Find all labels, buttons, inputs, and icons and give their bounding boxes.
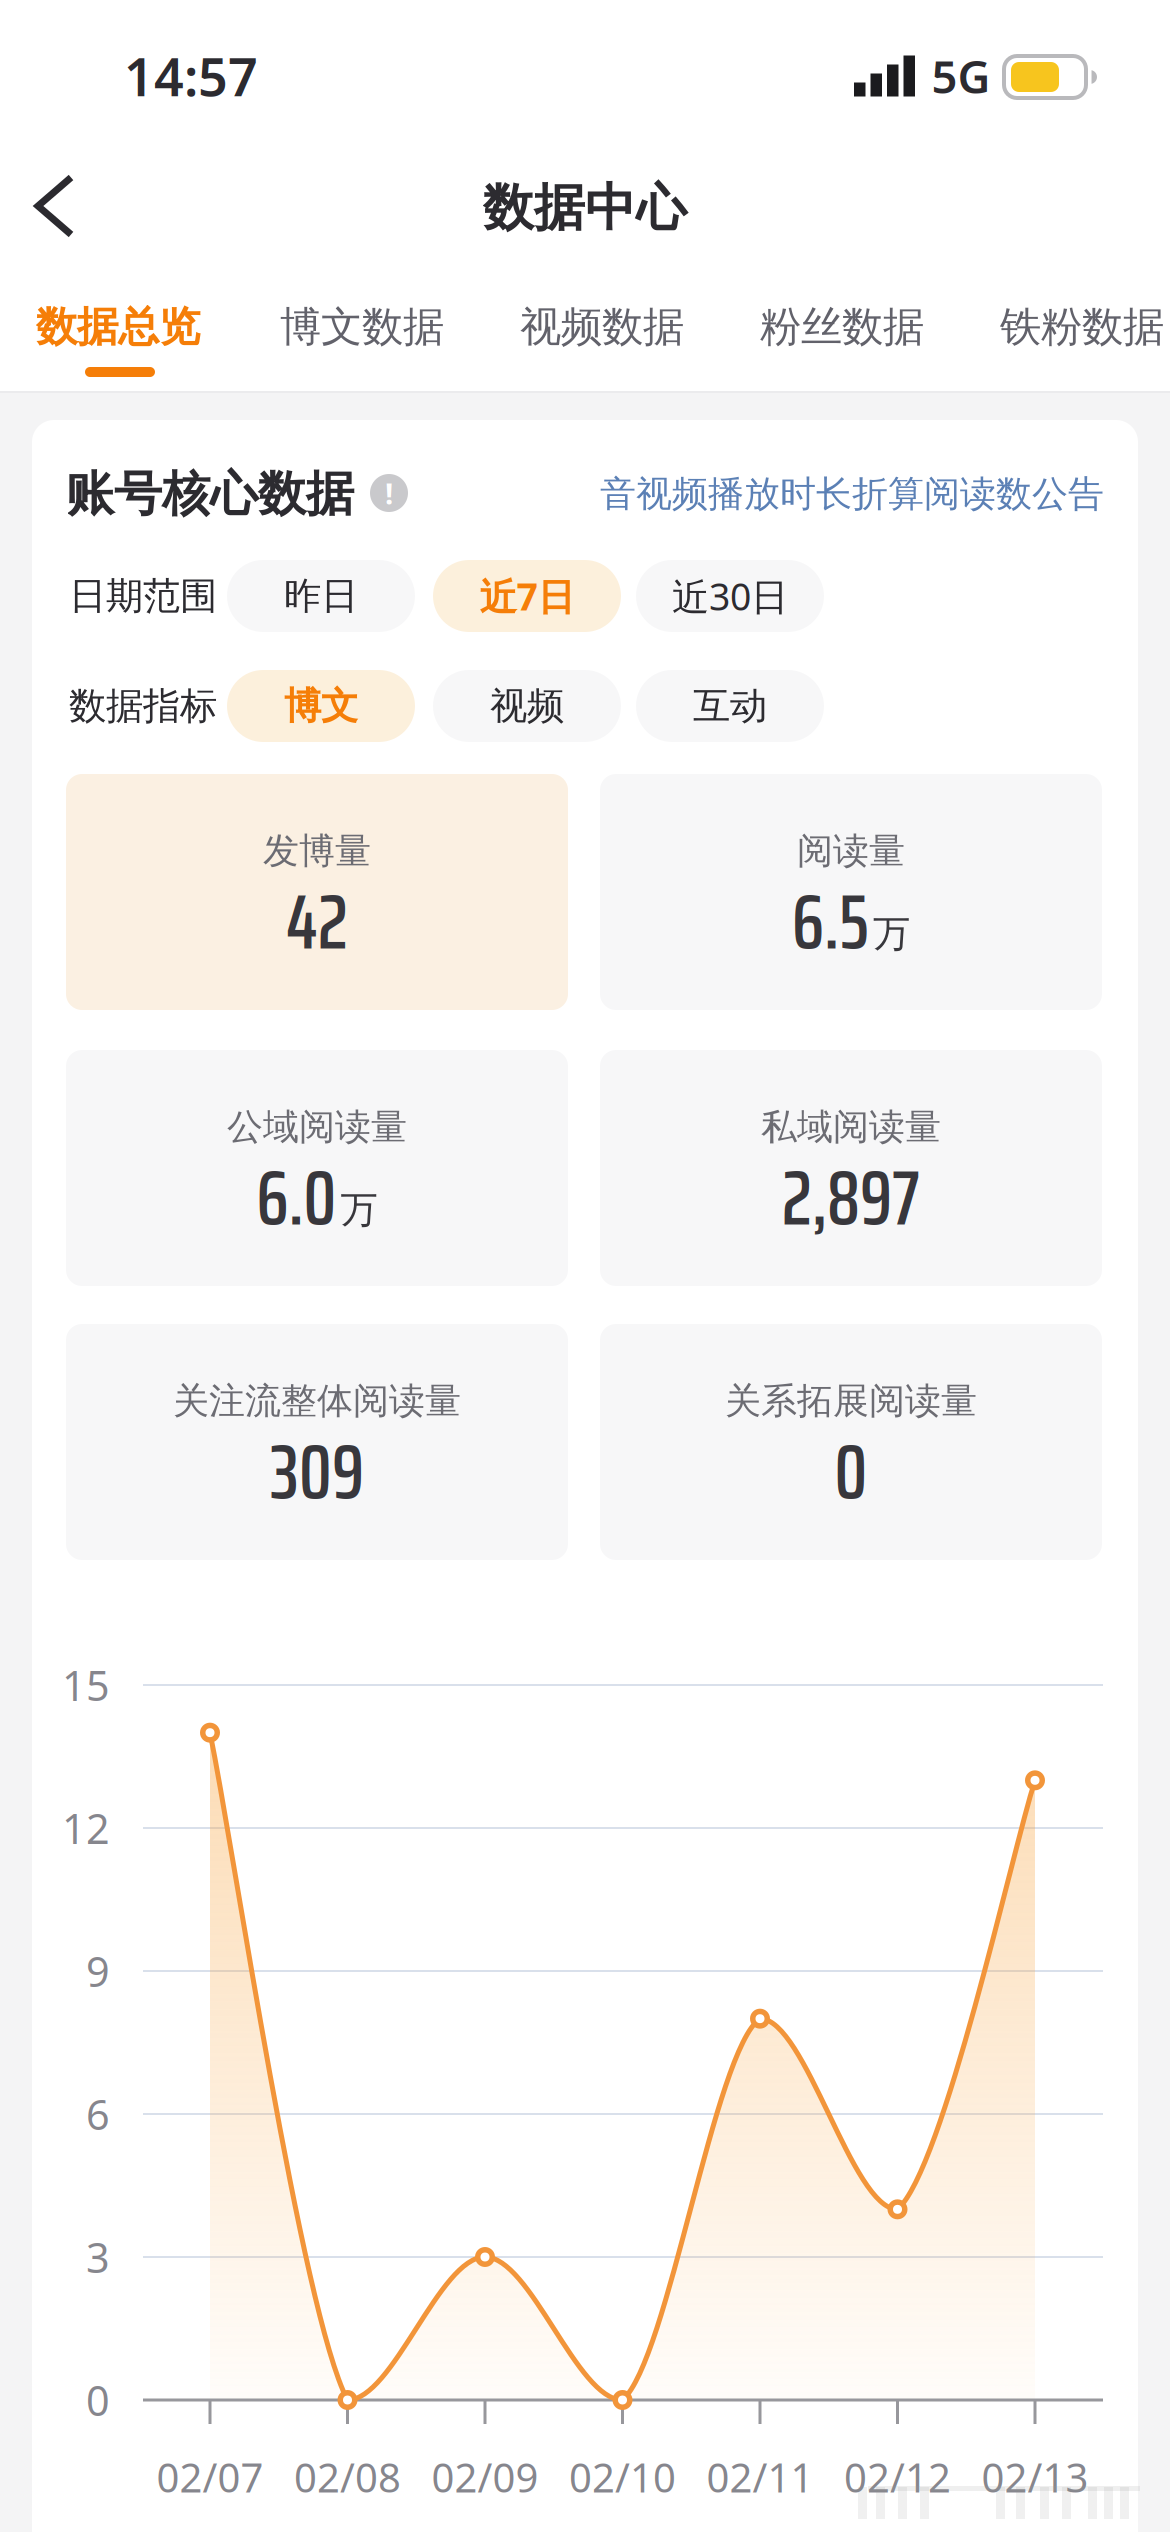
staticText: 02/09 <box>431 2450 538 2503</box>
staticText: 14:57 <box>124 41 258 111</box>
button[interactable]: 博文 <box>227 670 415 742</box>
staticText: 博文数据 <box>280 302 444 352</box>
staticText: 账号核心数据 <box>66 464 354 523</box>
staticText: 0 <box>86 2373 110 2427</box>
staticText: ! <box>385 473 393 512</box>
staticText: 9 <box>86 1944 110 1998</box>
staticText: 02/07 <box>156 2450 263 2503</box>
button[interactable]: 铁粉数据 <box>1000 302 1164 352</box>
button[interactable]: 近30日 <box>636 560 824 632</box>
staticText: 关系拓展阅读量 <box>725 1379 977 1423</box>
staticText: 关注流整体阅读量 <box>173 1379 461 1423</box>
button[interactable]: 视频 <box>433 670 621 742</box>
button[interactable]: 互动 <box>636 670 824 742</box>
button[interactable]: 博文数据 <box>280 302 444 352</box>
staticText: 万 <box>340 1187 377 1233</box>
staticText: 公域阅读量 <box>227 1105 407 1149</box>
button[interactable]: 昨日 <box>227 560 415 632</box>
staticText: 02/08 <box>294 2450 401 2503</box>
staticText: 02/10 <box>569 2450 676 2503</box>
staticText: 2,897 <box>782 1138 920 1258</box>
staticText: 铁粉数据 <box>1000 302 1164 352</box>
staticText: 私域阅读量 <box>761 1105 941 1149</box>
staticText: 02/13 <box>981 2450 1088 2503</box>
staticText: 近30日 <box>672 571 788 621</box>
staticText: 阅读量 <box>797 829 905 873</box>
staticText: 42 <box>286 862 348 982</box>
staticText: 6.5 <box>792 862 869 982</box>
staticText: 音视频播放时长折算阅读数公告 <box>600 472 1104 516</box>
staticText: 粉丝数据 <box>760 302 924 352</box>
staticText: 6.0 <box>256 1138 336 1258</box>
staticText: 02/12 <box>844 2450 951 2503</box>
button[interactable]: Info <box>370 473 408 512</box>
staticText: 数据指标 <box>69 683 217 729</box>
staticText: 近7日 <box>479 571 574 621</box>
staticText: 6 <box>86 2087 110 2141</box>
staticText: 博文 <box>284 683 358 729</box>
staticText: 视频数据 <box>520 302 684 352</box>
staticText: 5G <box>931 46 990 106</box>
button[interactable]: 音视频播放时长折算阅读数公告 <box>544 472 1104 516</box>
staticText: 12 <box>62 1801 110 1855</box>
staticText: 视频 <box>490 683 564 729</box>
staticText: 数据总览 <box>36 302 200 352</box>
staticText: 02/11 <box>706 2450 813 2503</box>
staticText: 互动 <box>693 683 767 729</box>
staticText: 15 <box>62 1658 110 1712</box>
staticText: 数据中心 <box>483 177 687 239</box>
button[interactable]: 数据总览 <box>36 302 200 352</box>
button[interactable]: Back <box>22 162 86 250</box>
staticText: 万 <box>873 911 910 957</box>
button[interactable]: 视频数据 <box>520 302 684 352</box>
button[interactable]: 近7日 <box>433 560 621 632</box>
staticText: 昨日 <box>284 573 358 619</box>
staticText: 309 <box>270 1412 364 1532</box>
staticText: 3 <box>86 2230 110 2284</box>
staticText: 0 <box>834 1412 867 1532</box>
staticText: 日期范围 <box>69 573 217 619</box>
button[interactable]: 粉丝数据 <box>760 302 924 352</box>
staticText: 发博量 <box>263 829 371 873</box>
